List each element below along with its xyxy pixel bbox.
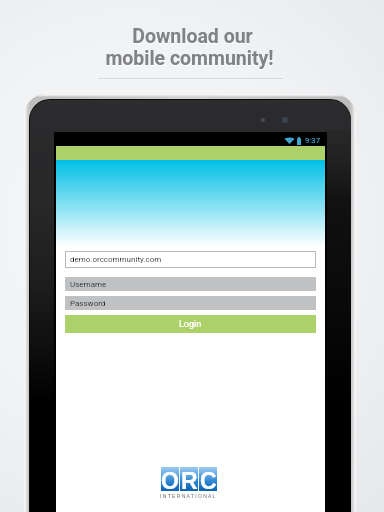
staticText: R [181,468,198,492]
staticText: 9:37 [305,136,321,145]
staticText: Password [70,299,106,308]
other: Battery [297,137,301,145]
staticText: Username [70,280,107,289]
staticText: C [200,468,217,492]
staticText: Download our [132,26,253,49]
staticText: demo.orccommunity.com [70,255,162,264]
staticText: mobile community! [105,47,274,70]
staticText: O [161,468,179,492]
button[interactable]: Password [65,296,316,310]
staticText: mobile community! [105,48,274,71]
button[interactable]: demo.orccommunity.com [65,251,316,268]
button[interactable]: Login [65,315,316,333]
other: Front camera [261,118,265,122]
other: Wi-Fi [285,137,294,144]
button[interactable]: Username [65,277,316,291]
staticText: Login [179,319,202,330]
staticText: I N T E R N A T I O N A L [160,493,216,499]
staticText: Download our [132,25,253,48]
